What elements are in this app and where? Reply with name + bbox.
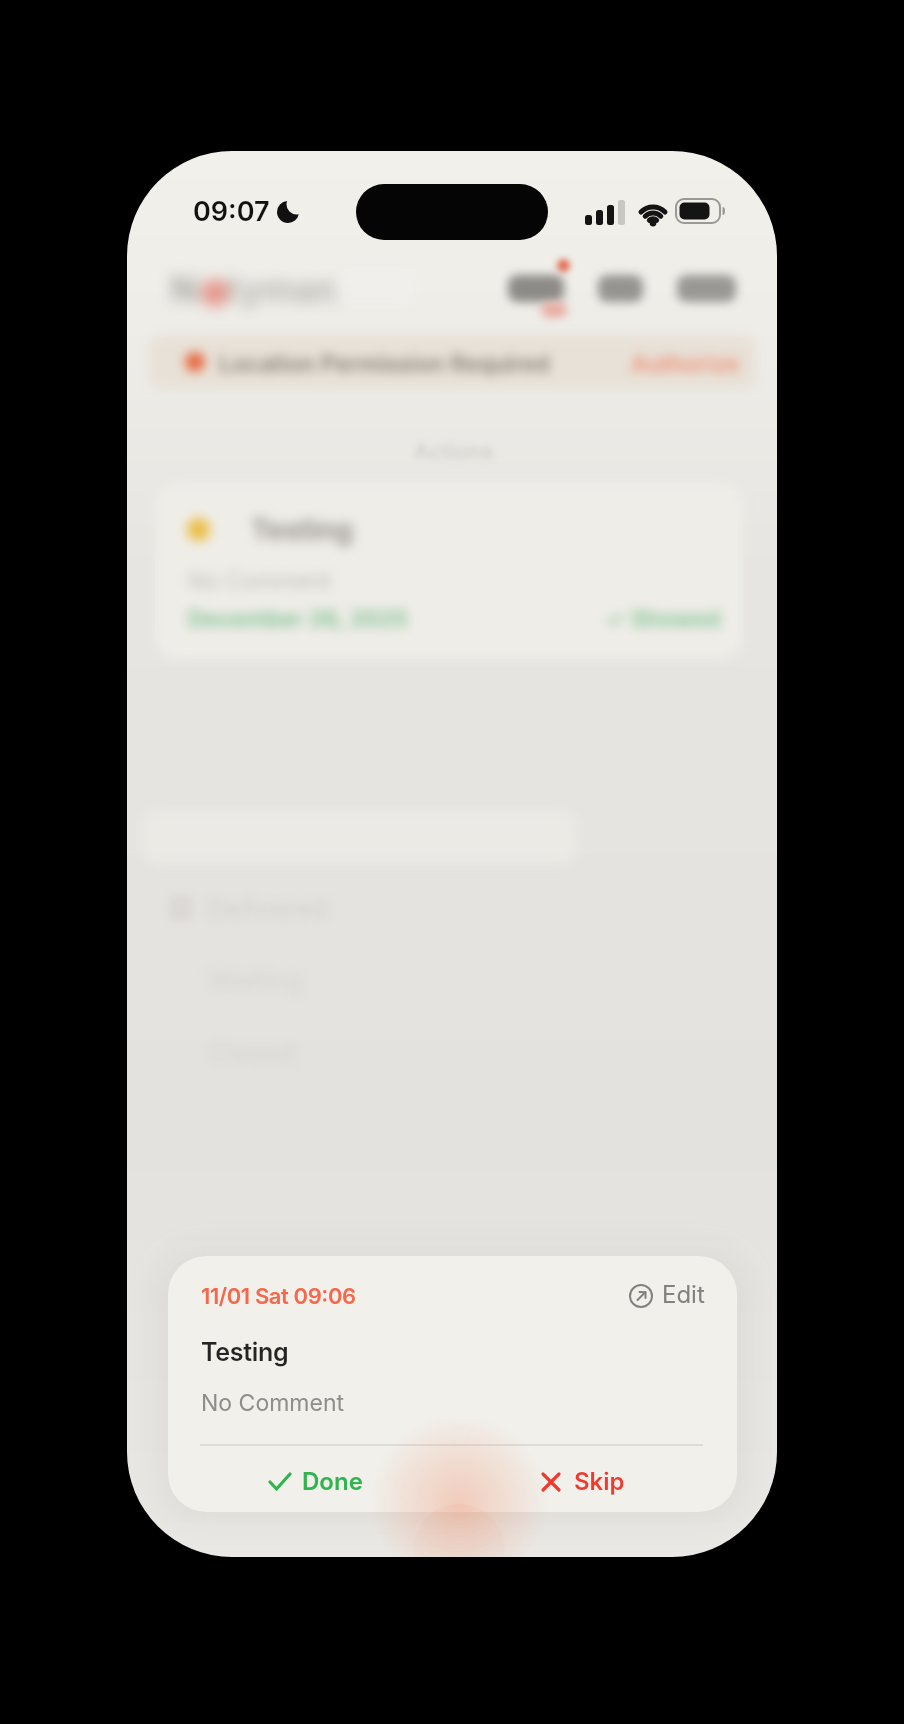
- staticText: Testing: [251, 513, 353, 547]
- button[interactable]: Done: [266, 1464, 363, 1498]
- staticText: N: [171, 267, 199, 311]
- staticText: 11/01 Sat 09:06: [201, 1283, 356, 1310]
- staticText: Authorize: [631, 350, 740, 378]
- staticText: December 26, 2025: [188, 605, 409, 633]
- staticText: ✓ Showed: [605, 605, 721, 633]
- button[interactable]: Skip: [538, 1464, 625, 1498]
- staticText: Actions: [414, 438, 494, 465]
- staticText: Skip: [574, 1467, 625, 1496]
- staticText: No Comment: [188, 567, 331, 595]
- staticText: Done: [302, 1467, 363, 1496]
- staticText: 09:07: [193, 195, 270, 228]
- staticText: tyman: [227, 267, 339, 311]
- staticText: No Comment: [201, 1389, 344, 1417]
- button[interactable]: Testing: [155, 483, 743, 659]
- staticText: Testing: [201, 1337, 289, 1367]
- button[interactable]: Location Permission Required: [149, 335, 756, 389]
- button[interactable]: Edit: [628, 1282, 671, 1311]
- staticText: Location Permission Required: [219, 350, 550, 378]
- staticText: Edit: [662, 1280, 705, 1309]
